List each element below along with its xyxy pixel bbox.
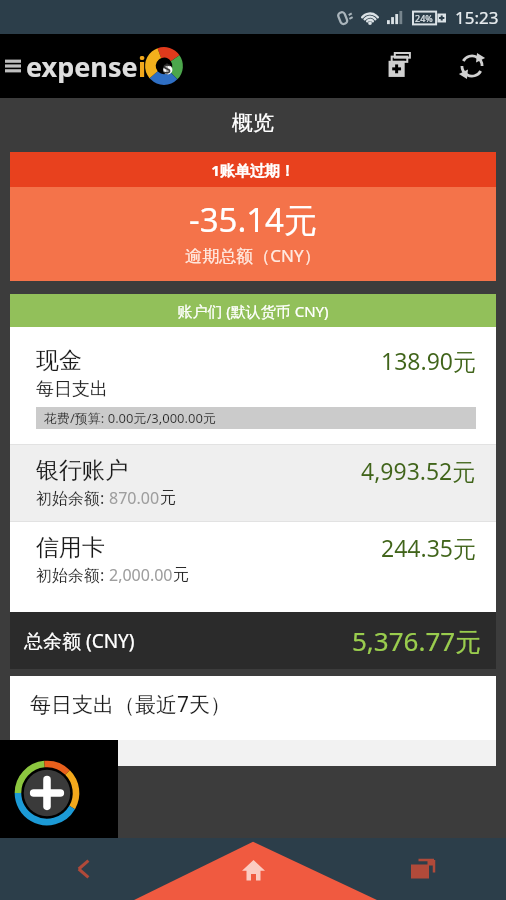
staticText: 5,376.77元	[352, 623, 482, 659]
staticText: i	[138, 48, 147, 85]
button[interactable]: 1账单过期！	[10, 152, 496, 281]
staticText: 花费/预算: 0.00元/3,000.00元	[44, 409, 216, 427]
staticText: 24%	[415, 12, 433, 24]
staticText: 逾期总额（CNY）	[10, 244, 496, 267]
staticText: -35.14元	[10, 197, 496, 242]
button[interactable]: Recent apps	[395, 842, 449, 896]
staticText: 每日支出（最近7天）	[30, 690, 232, 719]
staticText: 2,000.00	[109, 564, 173, 586]
button[interactable]: Refresh	[450, 44, 494, 88]
button[interactable]: Add transaction	[378, 44, 422, 88]
staticText: 元	[173, 565, 189, 585]
button[interactable]: 信用卡	[10, 522, 496, 598]
button[interactable]: Add	[14, 760, 80, 826]
staticText: 现金	[36, 346, 82, 375]
button[interactable]: 总余额 (CNY)	[10, 612, 496, 669]
button[interactable]: Back	[57, 842, 111, 896]
staticText: 138.90元	[381, 345, 476, 376]
staticText: 总余额 (CNY)	[24, 628, 135, 654]
staticText: 4,993.52元	[361, 455, 476, 486]
staticText: 概览	[0, 110, 506, 136]
staticText: 1账单过期！	[10, 160, 496, 180]
button[interactable]: Home	[226, 842, 280, 896]
staticText: 870.00	[109, 487, 160, 509]
staticText: 初始余额:	[36, 564, 109, 586]
staticText: 初始余额:	[36, 487, 109, 509]
button[interactable]: 现金	[10, 327, 496, 437]
staticText: 15:23	[455, 6, 499, 29]
staticText: 每日支出	[36, 378, 108, 401]
staticText: $	[163, 59, 172, 78]
button[interactable]: 银行账户	[10, 445, 496, 521]
staticText: 银行账户	[36, 456, 128, 485]
staticText: 信用卡	[36, 533, 105, 562]
staticText: expense	[26, 48, 138, 85]
staticText: 元	[160, 488, 176, 508]
staticText: 账户们 (默认货币 CNY)	[10, 301, 496, 321]
button[interactable]: Menu	[0, 46, 26, 86]
staticText: 244.35元	[381, 532, 476, 563]
